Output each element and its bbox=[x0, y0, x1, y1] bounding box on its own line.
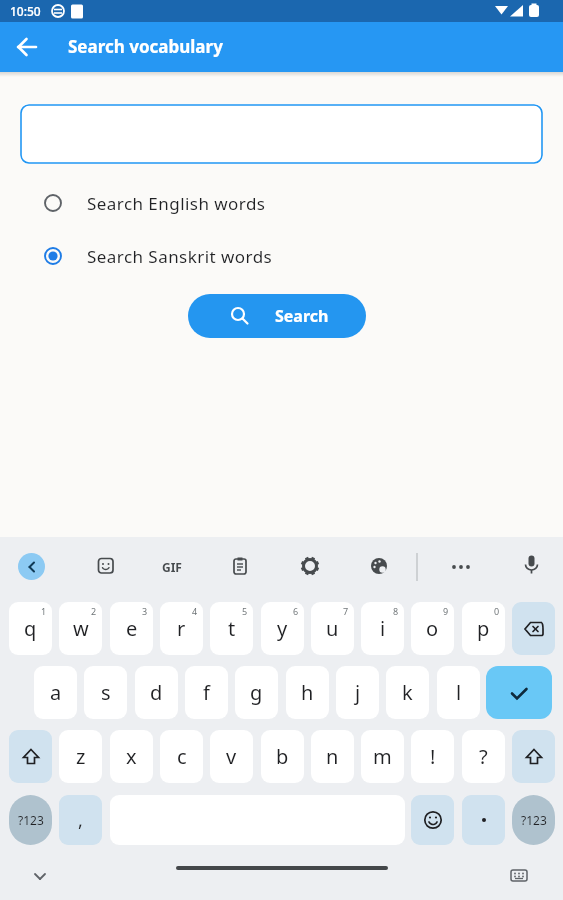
button[interactable]: Search bbox=[188, 294, 366, 338]
staticText: 1 bbox=[41, 605, 47, 617]
staticText: r bbox=[177, 615, 186, 642]
staticText: y bbox=[277, 615, 288, 642]
button[interactable]: w bbox=[59, 602, 102, 655]
button[interactable] bbox=[520, 553, 544, 577]
staticText: m bbox=[373, 743, 392, 770]
staticText: c bbox=[177, 743, 187, 770]
button[interactable]: , bbox=[59, 795, 102, 845]
button[interactable]: k bbox=[386, 666, 429, 719]
button[interactable] bbox=[512, 730, 555, 783]
button[interactable]: x bbox=[110, 730, 153, 783]
button[interactable] bbox=[8, 28, 46, 66]
staticText: 6 bbox=[293, 605, 299, 617]
button[interactable]: n bbox=[311, 730, 354, 783]
button[interactable] bbox=[9, 730, 52, 783]
button[interactable]: i bbox=[361, 602, 404, 655]
button[interactable]: j bbox=[336, 666, 379, 719]
button[interactable]: l bbox=[437, 666, 480, 719]
button[interactable]: ? bbox=[462, 730, 505, 783]
staticText: t bbox=[228, 615, 236, 642]
staticText: x bbox=[126, 743, 137, 770]
button[interactable]: a bbox=[34, 666, 77, 719]
staticText: , bbox=[78, 808, 83, 833]
staticText: 4 bbox=[192, 605, 198, 617]
button[interactable] bbox=[18, 553, 45, 580]
button[interactable]: q bbox=[9, 602, 52, 655]
button[interactable]: b bbox=[261, 730, 304, 783]
button[interactable]: m bbox=[361, 730, 404, 783]
button[interactable] bbox=[447, 557, 475, 577]
button[interactable]: Search English words bbox=[36, 186, 336, 220]
staticText: 0 bbox=[494, 605, 500, 617]
staticText: v bbox=[226, 743, 237, 770]
button[interactable]: ! bbox=[411, 730, 454, 783]
staticText: p bbox=[477, 615, 490, 642]
button[interactable] bbox=[299, 555, 323, 579]
button[interactable] bbox=[368, 555, 392, 579]
button[interactable] bbox=[486, 666, 552, 719]
button[interactable]: e bbox=[110, 602, 153, 655]
button[interactable] bbox=[462, 795, 505, 845]
staticText: l bbox=[456, 679, 462, 706]
staticText: k bbox=[402, 679, 413, 706]
button[interactable]: z bbox=[59, 730, 102, 783]
staticText: j bbox=[355, 679, 361, 706]
staticText: 8 bbox=[393, 605, 399, 617]
staticText: a bbox=[50, 679, 62, 706]
button[interactable] bbox=[229, 555, 253, 579]
staticText: s bbox=[101, 679, 111, 706]
button[interactable]: c bbox=[160, 730, 203, 783]
button[interactable]: p bbox=[462, 602, 505, 655]
staticText: e bbox=[126, 615, 138, 642]
staticText: 10:50 bbox=[10, 3, 41, 19]
button[interactable] bbox=[512, 602, 555, 655]
button[interactable]: u bbox=[311, 602, 354, 655]
staticText: 5 bbox=[242, 605, 248, 617]
staticText: g bbox=[250, 679, 263, 706]
button[interactable]: ?123 bbox=[9, 795, 52, 845]
staticText: i bbox=[380, 615, 386, 642]
button[interactable]: ?123 bbox=[512, 795, 555, 845]
button[interactable]: s bbox=[84, 666, 127, 719]
button[interactable]: o bbox=[411, 602, 454, 655]
staticText: 3 bbox=[142, 605, 148, 617]
staticText: 9 bbox=[443, 605, 449, 617]
staticText: b bbox=[276, 743, 289, 770]
staticText: q bbox=[24, 615, 37, 642]
staticText: u bbox=[326, 615, 339, 642]
staticText: Search bbox=[275, 305, 329, 327]
staticText: GIF bbox=[162, 559, 182, 575]
staticText: ! bbox=[430, 743, 436, 770]
staticText: ?123 bbox=[521, 812, 547, 828]
staticText: d bbox=[150, 679, 163, 706]
button[interactable]: Search Sanskrit words bbox=[36, 239, 336, 273]
button[interactable]: y bbox=[261, 602, 304, 655]
staticText: z bbox=[76, 743, 86, 770]
staticText: Search Sanskrit words bbox=[87, 245, 273, 268]
button[interactable]: GIF bbox=[156, 558, 188, 576]
staticText: o bbox=[426, 615, 439, 642]
staticText: 7 bbox=[343, 605, 349, 617]
staticText: n bbox=[326, 743, 339, 770]
staticText: w bbox=[73, 615, 89, 642]
staticText: ? bbox=[479, 743, 488, 770]
button[interactable]: r bbox=[160, 602, 203, 655]
button[interactable]: f bbox=[185, 666, 228, 719]
staticText: ?123 bbox=[18, 812, 44, 828]
staticText: 2 bbox=[91, 605, 97, 617]
staticText: Search vocabulary bbox=[68, 35, 223, 58]
button[interactable]: d bbox=[135, 666, 178, 719]
button[interactable] bbox=[95, 555, 119, 579]
staticText: Search English words bbox=[87, 192, 266, 215]
staticText: h bbox=[301, 679, 314, 706]
button[interactable] bbox=[20, 104, 543, 164]
button[interactable]: h bbox=[286, 666, 329, 719]
staticText: f bbox=[203, 679, 210, 706]
button[interactable] bbox=[411, 795, 454, 845]
button[interactable]: v bbox=[210, 730, 253, 783]
button[interactable]: g bbox=[235, 666, 278, 719]
button[interactable]: t bbox=[210, 602, 253, 655]
